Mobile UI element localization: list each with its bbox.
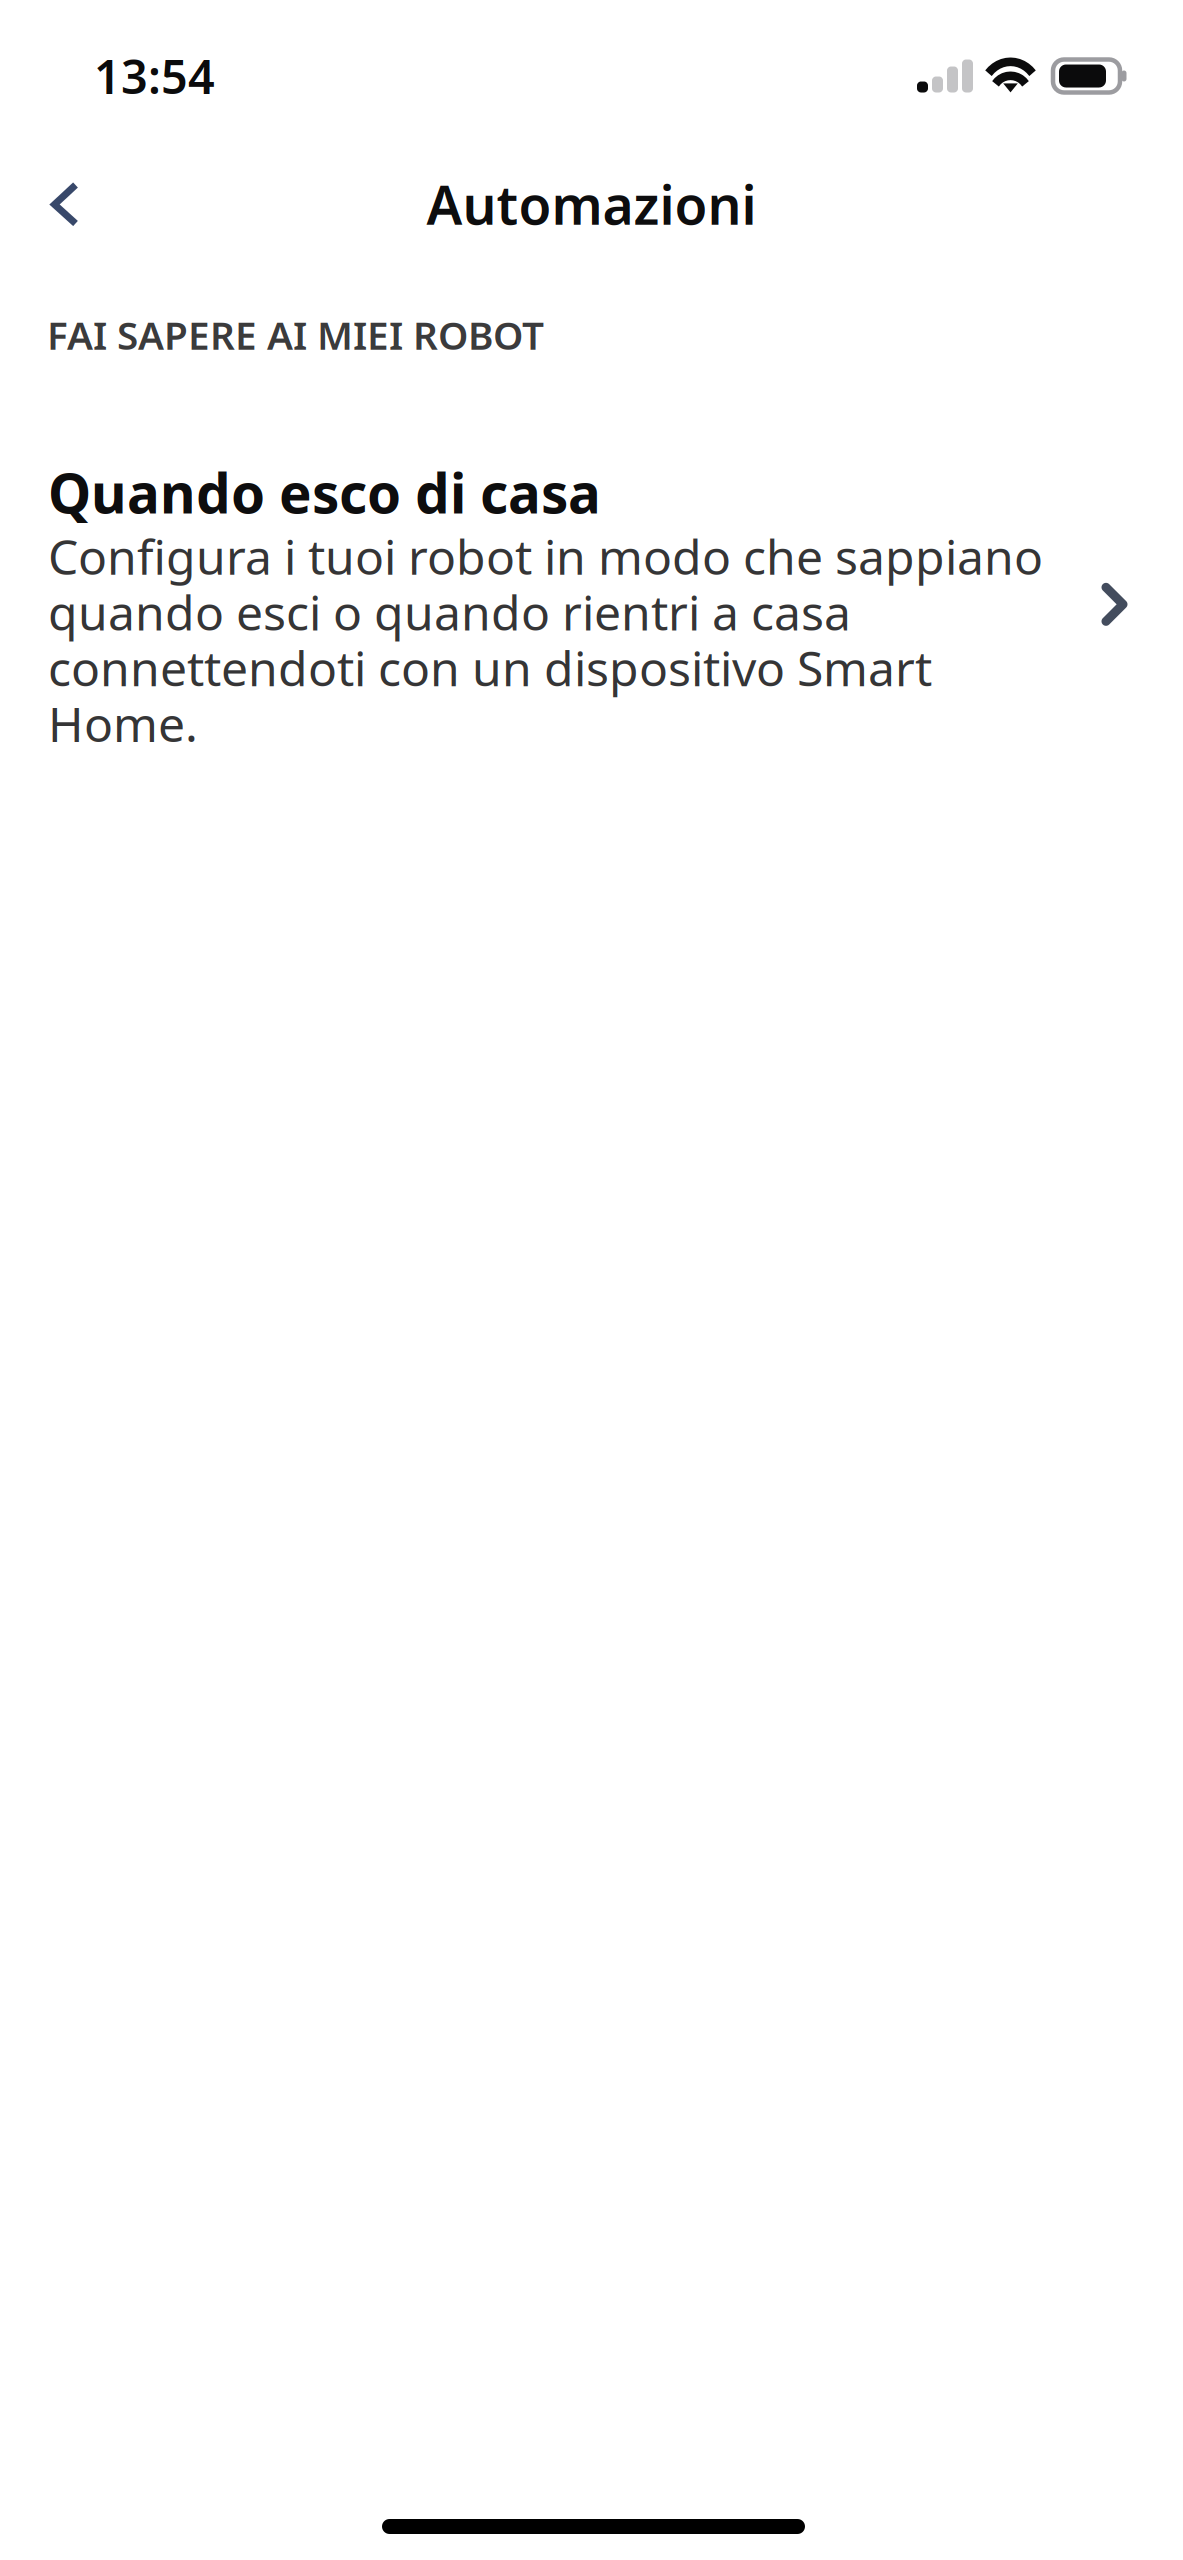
staticText: 13:54	[94, 45, 215, 107]
staticText: Configura i tuoi robot in modo che sappi…	[48, 524, 1043, 755]
button[interactable]: Quando esco di casa	[0, 463, 1183, 755]
staticText: Automazioni	[426, 169, 756, 239]
button[interactable]: Back	[0, 158, 108, 249]
staticText: Quando esco di casa	[48, 456, 601, 529]
staticText: FAI SAPERE AI MIEI ROBOT	[47, 309, 544, 360]
